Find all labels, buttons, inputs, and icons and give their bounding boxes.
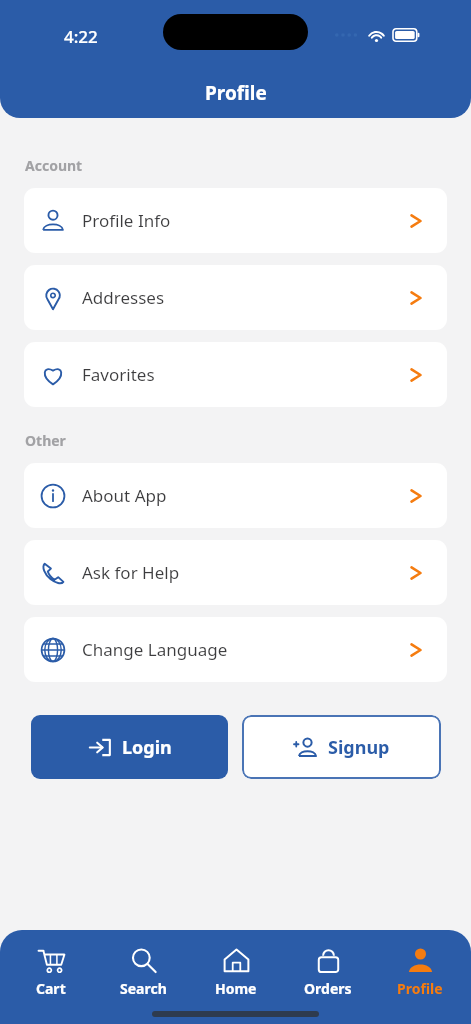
staticText: Change Language: [82, 638, 228, 661]
button[interactable]: Signup: [242, 715, 441, 779]
staticText: Favorites: [82, 363, 155, 386]
staticText: Home: [215, 979, 257, 998]
staticText: Cart: [36, 979, 66, 998]
staticText: Profile: [397, 979, 443, 998]
staticText: About App: [82, 484, 167, 507]
button[interactable]: Orders: [287, 944, 369, 1001]
button[interactable]: Profile: [379, 944, 461, 1001]
staticText: Orders: [304, 979, 352, 998]
staticText: Addresses: [82, 286, 165, 309]
button[interactable]: Home: [195, 944, 277, 1001]
staticText: Ask for Help: [82, 561, 180, 584]
button[interactable]: Login: [31, 715, 228, 779]
button[interactable]: Addresses: [24, 265, 447, 330]
staticText: Other: [25, 431, 66, 450]
staticText: Signup: [328, 735, 390, 760]
staticText: Search: [120, 979, 167, 998]
button[interactable]: Change Language: [24, 617, 447, 682]
staticText: 4:22: [64, 25, 98, 48]
staticText: Profile: [205, 80, 267, 106]
button[interactable]: Profile Info: [24, 188, 447, 253]
staticText: Account: [25, 156, 83, 175]
button[interactable]: Favorites: [24, 342, 447, 407]
button[interactable]: Search: [102, 944, 184, 1001]
staticText: Profile Info: [82, 209, 171, 232]
button[interactable]: Cart: [10, 944, 92, 1001]
button[interactable]: About App: [24, 463, 447, 528]
button[interactable]: Ask for Help: [24, 540, 447, 605]
staticText: Login: [122, 735, 172, 760]
